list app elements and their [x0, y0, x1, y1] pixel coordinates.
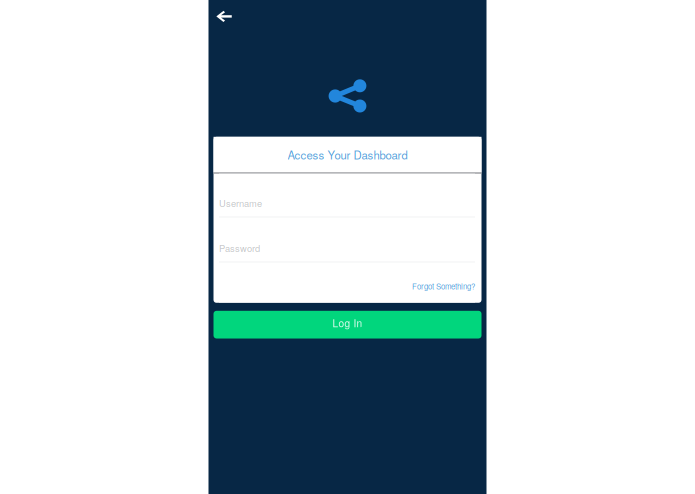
button[interactable]: Forgot Something?: [219, 263, 475, 303]
button[interactable]: Password: [219, 218, 475, 263]
button[interactable]: Username: [219, 174, 475, 218]
button[interactable]: Log In: [213, 311, 481, 338]
staticText: Access Your Dashboard: [287, 146, 407, 163]
staticText: Password: [219, 241, 260, 255]
staticText: Log In: [332, 316, 362, 330]
staticText: Username: [219, 196, 262, 210]
staticText: Forgot Something?: [412, 281, 475, 292]
button[interactable]: Back: [209, 1, 239, 31]
